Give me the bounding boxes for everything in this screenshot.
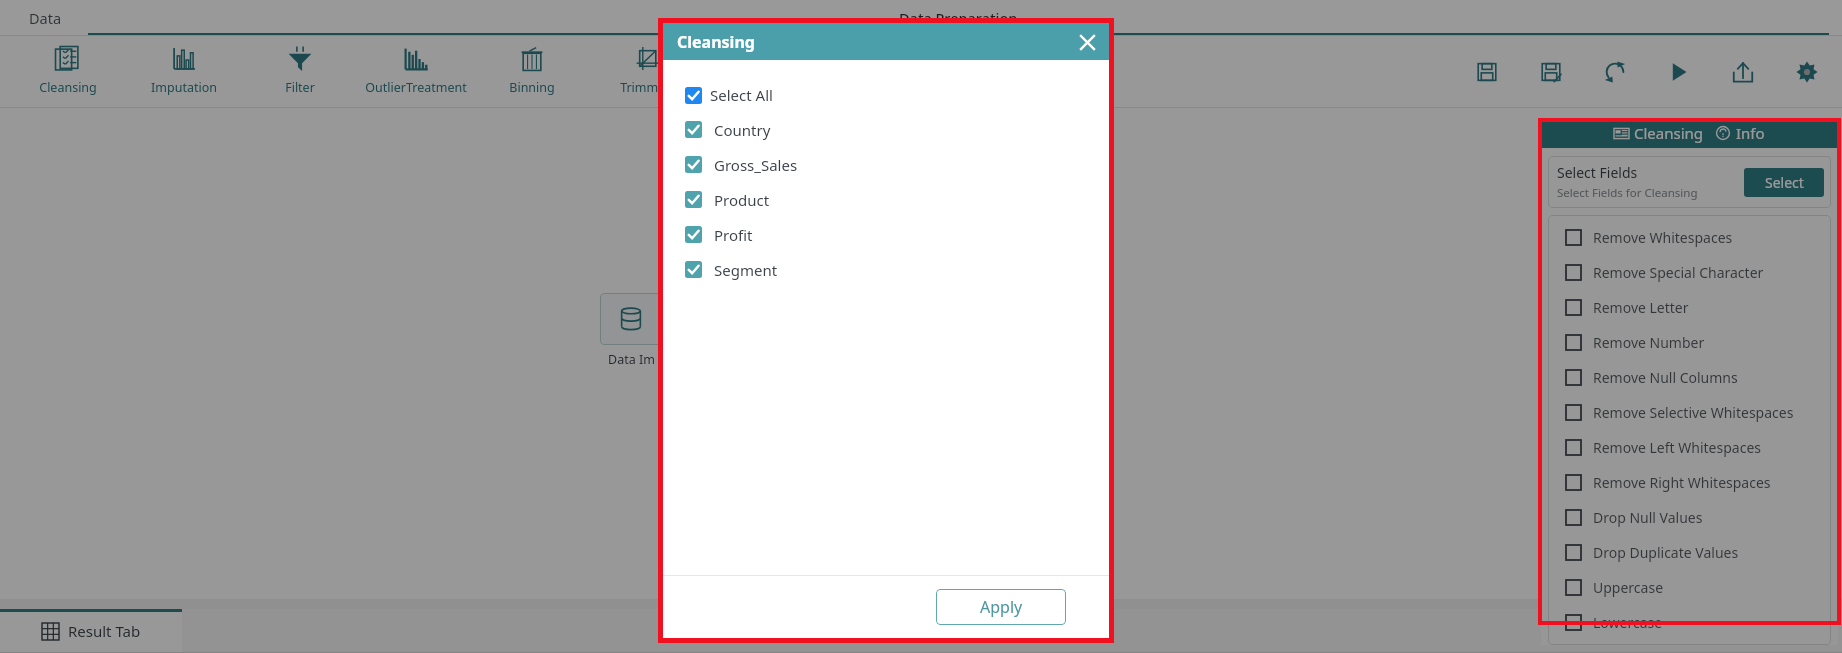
- staticText: Select Fields: [1557, 163, 1638, 182]
- button[interactable]: Profit: [685, 217, 753, 252]
- staticText: Remove Null Columns: [1593, 368, 1738, 387]
- staticText: Cleansing: [677, 31, 755, 53]
- button[interactable]: Save: [1472, 57, 1502, 87]
- button[interactable]: Imputation: [126, 36, 242, 108]
- button[interactable]: Remove Letter: [1548, 290, 1831, 325]
- staticText: Segment: [714, 260, 778, 280]
- button[interactable]: Product: [685, 182, 770, 217]
- button[interactable]: Remove Left Whitespaces: [1548, 430, 1831, 465]
- button[interactable]: Binning: [474, 36, 590, 108]
- button[interactable]: Apply: [936, 589, 1066, 625]
- staticText: Country: [714, 120, 771, 140]
- button[interactable]: Export: [1728, 57, 1758, 87]
- staticText: Uppercase: [1593, 578, 1664, 597]
- button[interactable]: Cleansing: [10, 36, 126, 108]
- button[interactable]: Lowercase: [1548, 605, 1831, 640]
- staticText: Profit: [714, 225, 753, 245]
- button[interactable]: Result Tab: [0, 609, 182, 653]
- staticText: Remove Number: [1593, 333, 1705, 352]
- staticText: Select All: [710, 85, 773, 105]
- button[interactable]: Remove Special Character: [1548, 255, 1831, 290]
- button[interactable]: Gross_Sales: [685, 147, 798, 182]
- staticText: Cleansing: [39, 79, 97, 96]
- button[interactable]: Remove Selective Whitespaces: [1548, 395, 1831, 430]
- button[interactable]: Run: [1664, 57, 1694, 87]
- button[interactable]: Drop Duplicate Values: [1548, 535, 1831, 570]
- staticText: Drop Duplicate Values: [1593, 543, 1739, 562]
- staticText: Filter: [285, 79, 315, 96]
- staticText: Data: [29, 8, 62, 28]
- staticText: Gross_Sales: [714, 155, 798, 175]
- staticText: Data Preparation: [899, 8, 1018, 28]
- staticText: Result Tab: [68, 621, 141, 641]
- button[interactable]: Remove Whitespaces: [1548, 220, 1831, 255]
- button[interactable]: Country: [685, 112, 771, 147]
- button[interactable]: [600, 293, 662, 345]
- button[interactable]: Trimming: [590, 36, 706, 108]
- button[interactable]: Segment: [685, 252, 778, 287]
- button[interactable]: Data Preparation: [75, 0, 1842, 36]
- staticText: Remove Letter: [1593, 298, 1689, 317]
- staticText: Remove Special Character: [1593, 263, 1764, 282]
- staticText: Drop Null Values: [1593, 508, 1703, 527]
- staticText: Binning: [509, 79, 555, 96]
- staticText: Imputation: [151, 79, 217, 96]
- button[interactable]: Drop Null Values: [1548, 500, 1831, 535]
- staticText: Lowercase: [1593, 613, 1663, 632]
- button[interactable]: Settings: [1792, 57, 1822, 87]
- button[interactable]: Select: [1744, 168, 1824, 197]
- staticText: Remove Selective Whitespaces: [1593, 403, 1794, 422]
- staticText: Data Im: [608, 351, 655, 368]
- staticText: OutlierTreatment: [365, 79, 467, 96]
- button[interactable]: Remove Right Whitespaces: [1548, 465, 1831, 500]
- button[interactable]: Filter: [242, 36, 358, 108]
- staticText: Select: [1765, 173, 1804, 192]
- staticText: Product: [714, 190, 770, 210]
- staticText: Remove Left Whitespaces: [1593, 438, 1761, 457]
- button[interactable]: Remove Null Columns: [1548, 360, 1831, 395]
- staticText: Remove Right Whitespaces: [1593, 473, 1771, 492]
- button[interactable]: OutlierTreatment: [358, 36, 474, 108]
- button[interactable]: Save As: [1536, 57, 1566, 87]
- staticText: Select Fields for Cleansing: [1557, 185, 1698, 201]
- staticText: Trimming: [620, 79, 677, 96]
- button[interactable]: Select All: [685, 78, 773, 112]
- staticText: Apply: [980, 596, 1023, 618]
- button[interactable]: Refresh: [1600, 57, 1630, 87]
- button[interactable]: Data: [16, 0, 75, 36]
- staticText: Info: [1736, 123, 1765, 143]
- button[interactable]: Remove Number: [1548, 325, 1831, 360]
- staticText: Cleansing: [1634, 123, 1704, 143]
- button[interactable]: Close: [1075, 30, 1099, 54]
- staticText: Remove Whitespaces: [1593, 228, 1733, 247]
- button[interactable]: Uppercase: [1548, 570, 1831, 605]
